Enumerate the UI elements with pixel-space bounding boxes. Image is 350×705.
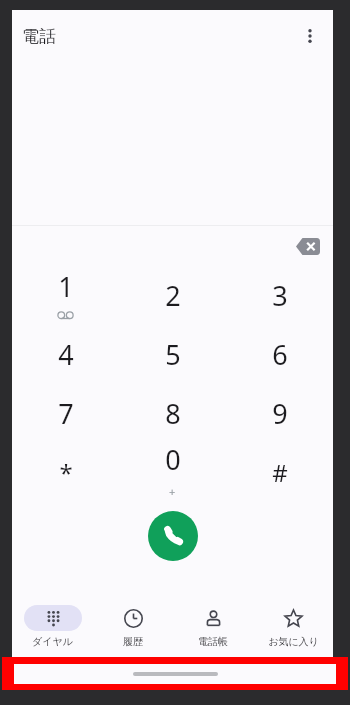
staticText: + [169, 484, 176, 499]
staticText: 3 [272, 277, 288, 314]
button[interactable]: 9 [226, 384, 333, 443]
button[interactable]: 電話帳 [173, 595, 253, 657]
button[interactable]: ダイヤル [12, 595, 93, 657]
button[interactable]: More options [293, 19, 327, 53]
button[interactable]: 5 [119, 325, 226, 384]
button[interactable]: 2 [119, 266, 226, 325]
staticText: 5 [165, 336, 181, 373]
button[interactable]: * [12, 443, 119, 502]
staticText: # [272, 456, 288, 489]
button[interactable]: お気に入り [253, 595, 333, 657]
staticText: 1 [58, 268, 74, 305]
button[interactable]: 0 [119, 443, 226, 502]
staticText: 4 [58, 336, 74, 373]
button[interactable]: 履歴 [93, 595, 173, 657]
staticText: 0 [165, 441, 181, 478]
button[interactable]: 6 [226, 325, 333, 384]
button[interactable]: Call [148, 511, 198, 561]
staticText: 履歴 [123, 635, 143, 648]
button[interactable]: Backspace [289, 227, 327, 265]
staticText: 電話帳 [198, 635, 228, 648]
button[interactable]: 3 [226, 266, 333, 325]
staticText: お気に入り [268, 635, 319, 648]
button[interactable]: 7 [12, 384, 119, 443]
staticText: 電話 [22, 26, 56, 47]
button[interactable]: 1 [12, 266, 119, 325]
staticText: 9 [272, 395, 288, 432]
staticText: 6 [272, 336, 288, 373]
staticText: 2 [165, 277, 181, 314]
staticText: * [59, 456, 73, 489]
button[interactable]: # [226, 443, 333, 502]
button[interactable]: 8 [119, 384, 226, 443]
staticText: ダイヤル [32, 635, 73, 648]
button[interactable]: 4 [12, 325, 119, 384]
staticText: 7 [58, 395, 74, 432]
staticText: 8 [165, 395, 181, 432]
